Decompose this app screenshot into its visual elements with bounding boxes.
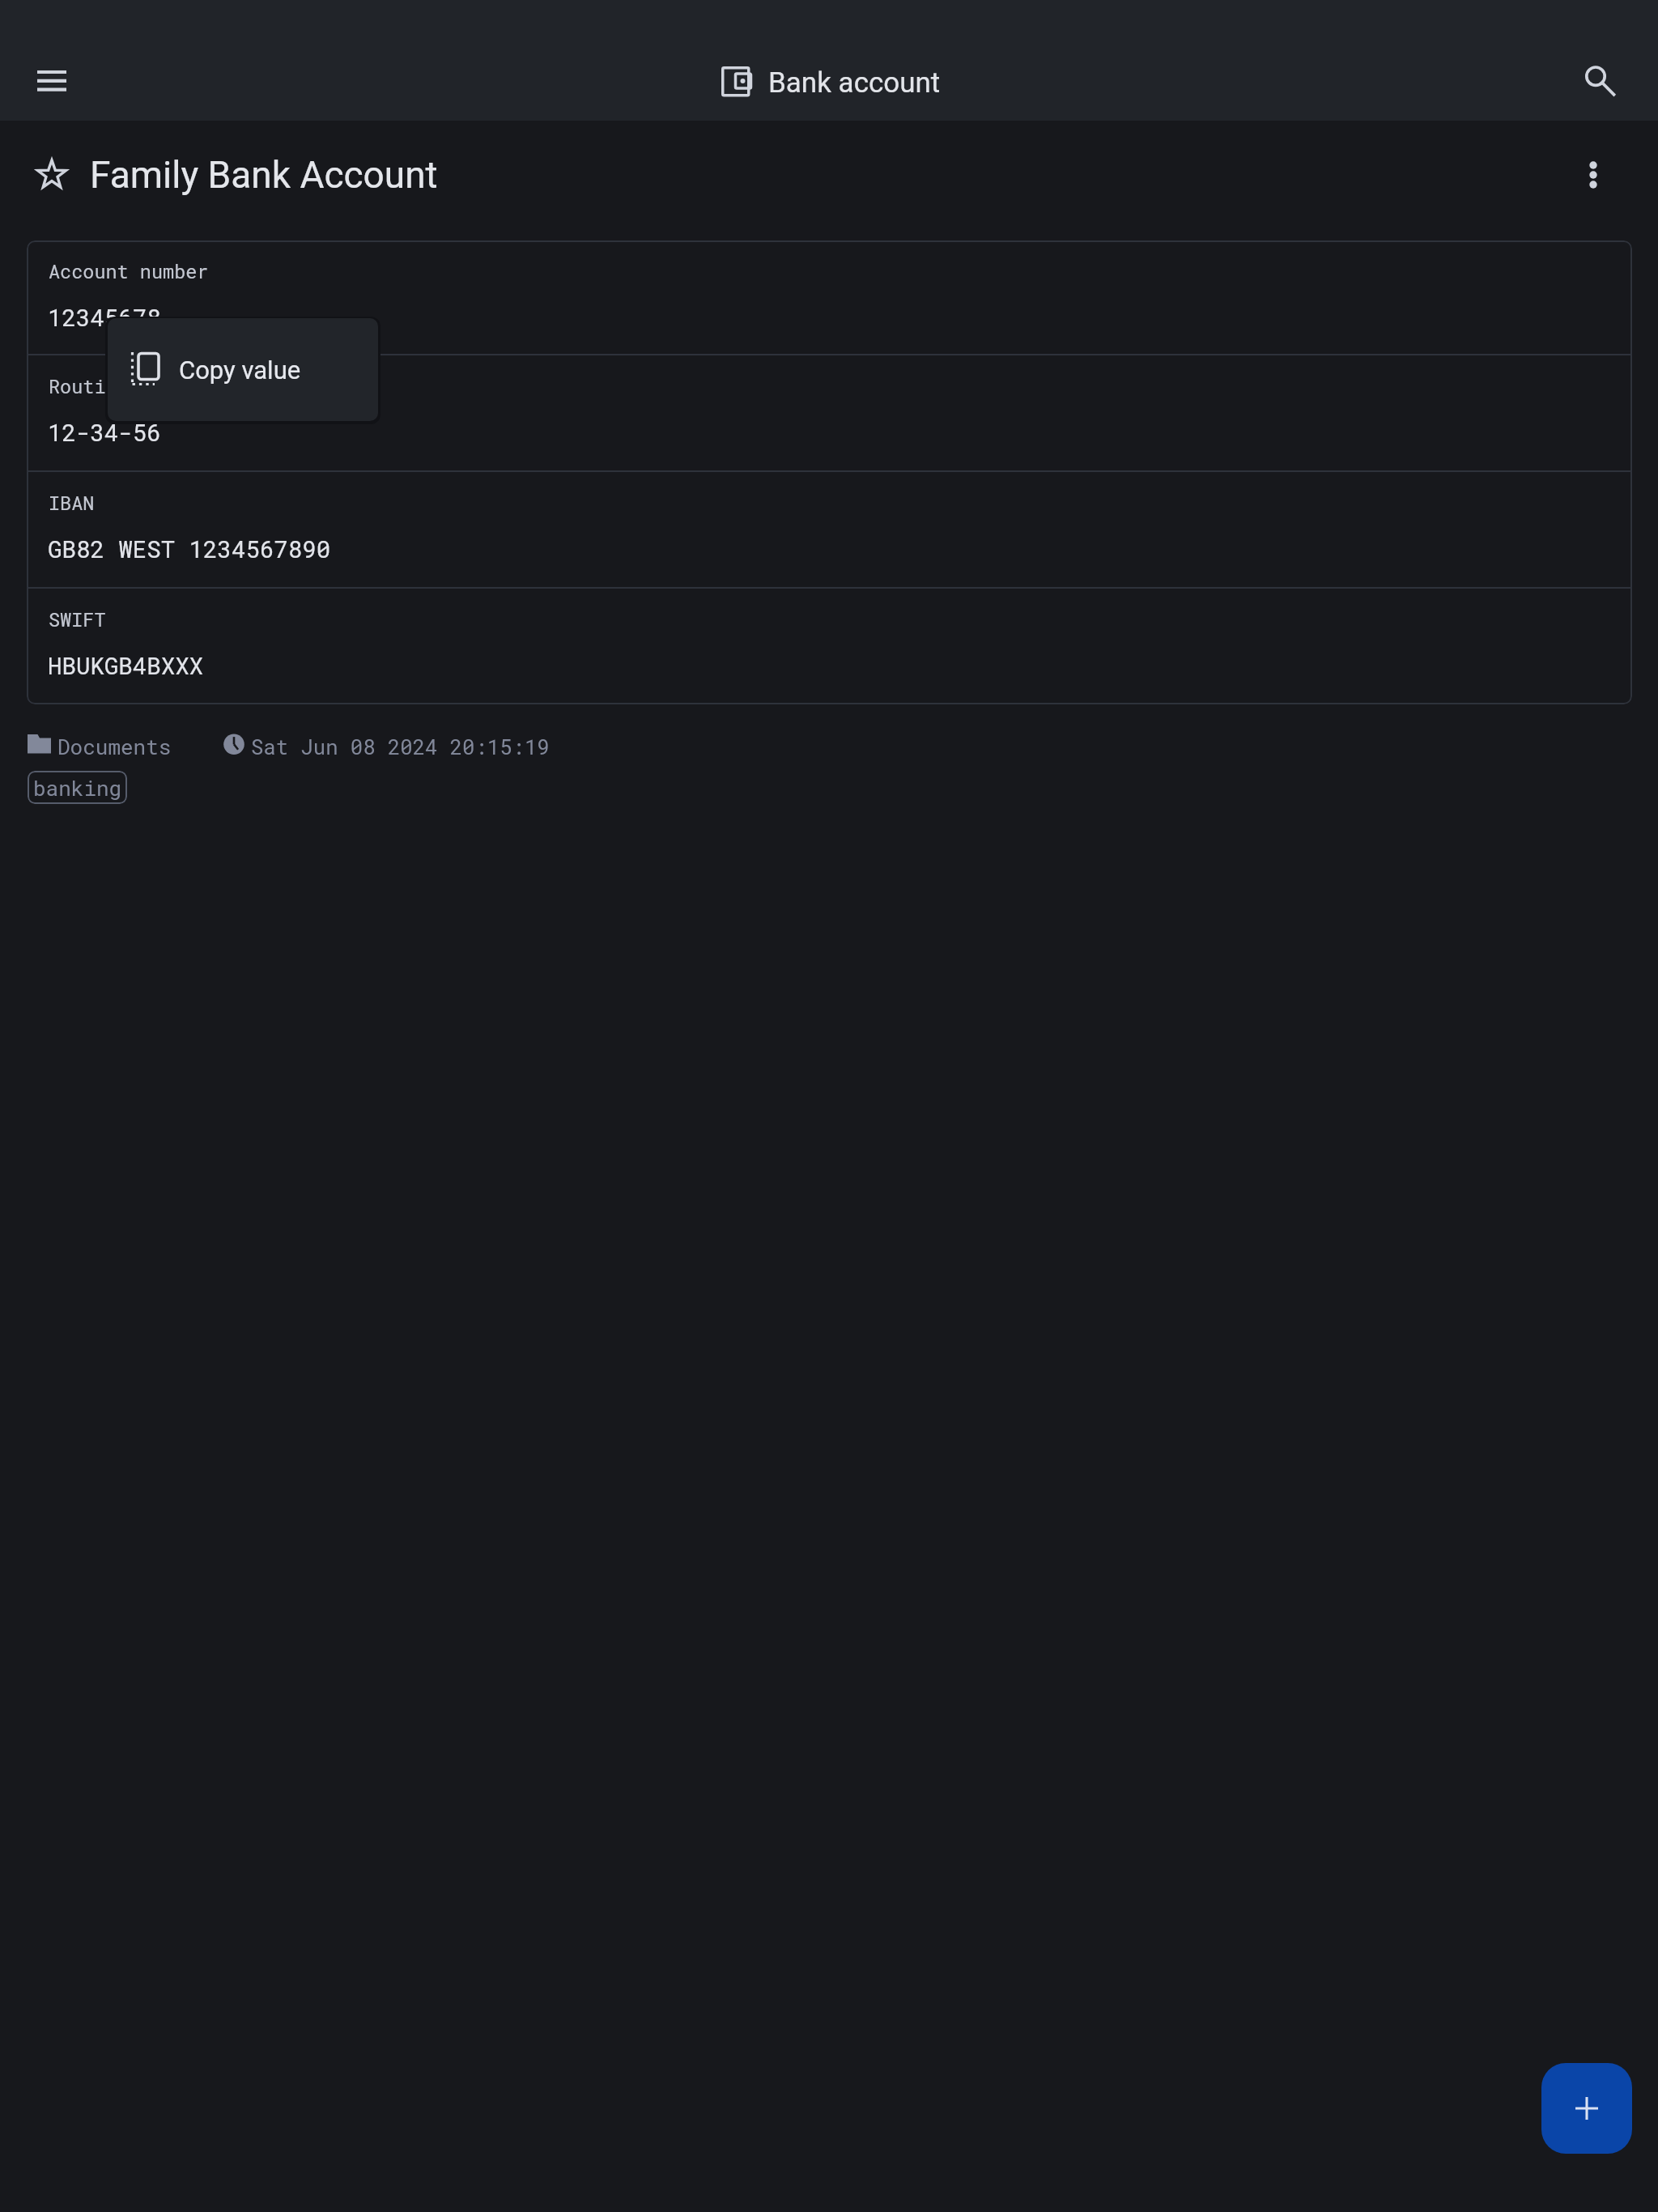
button[interactable]: Favourite (16, 138, 87, 210)
button[interactable]: Open navigation menu (10, 39, 94, 123)
staticText: Copy value (179, 355, 301, 385)
button[interactable]: IBAN (27, 472, 1632, 589)
button[interactable]: Account number (27, 240, 1632, 355)
staticText: Sat Jun 08 2024 20:15:19 (251, 733, 550, 760)
staticText: banking (33, 774, 122, 802)
button[interactable]: Search (1551, 36, 1640, 125)
staticText: SWIFT (49, 606, 106, 632)
staticText: Account number (49, 258, 209, 283)
button[interactable]: Copy value (108, 318, 378, 421)
button[interactable]: More options (1554, 136, 1632, 214)
staticText: HBUKGB4BXXX (48, 650, 204, 681)
staticText: Family Bank Account (90, 153, 438, 197)
staticText: IBAN (49, 490, 95, 515)
staticText: Bank account (768, 66, 941, 100)
button[interactable]: Add (1541, 2063, 1632, 2154)
staticText: 12345678 (48, 302, 161, 333)
staticText: Routing number (49, 373, 209, 398)
button[interactable]: Routing number (27, 355, 1632, 472)
staticText: GB82 WEST 1234567890 (48, 534, 331, 564)
staticText: Documents (57, 733, 172, 760)
button[interactable]: banking (28, 771, 127, 804)
button[interactable]: SWIFT (27, 589, 1632, 704)
staticText: 12-34-56 (48, 417, 161, 448)
